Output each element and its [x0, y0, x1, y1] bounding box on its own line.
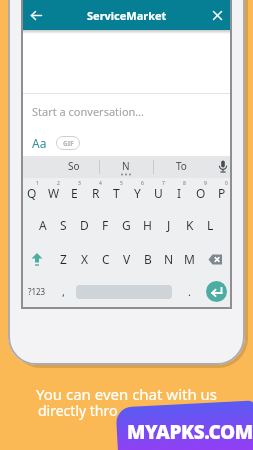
button[interactable]: N — [122, 159, 130, 173]
staticText: directly thro — [38, 401, 118, 420]
staticText: U — [154, 185, 163, 201]
button[interactable]: I — [169, 178, 190, 208]
button[interactable]: F — [95, 208, 116, 242]
staticText: Q — [27, 185, 37, 201]
staticText: 8 — [183, 180, 186, 187]
staticText: Y — [134, 185, 141, 201]
staticText: 6 — [141, 180, 144, 187]
staticText: C — [102, 251, 110, 267]
staticText: MYAPKS.COM — [127, 419, 253, 445]
button[interactable]: B — [137, 242, 158, 276]
button[interactable]: So — [68, 159, 80, 173]
button[interactable]: M — [179, 242, 200, 276]
button[interactable]: G — [116, 208, 137, 242]
button[interactable]: L — [200, 208, 221, 242]
staticText: R — [92, 185, 100, 201]
button[interactable] — [200, 242, 232, 276]
staticText: F — [102, 217, 109, 233]
button[interactable]: P — [211, 178, 232, 208]
staticText: Start a conversation… — [32, 104, 145, 119]
staticText: X — [81, 251, 89, 267]
staticText: M — [184, 251, 195, 267]
button[interactable]: Z — [53, 242, 74, 276]
button[interactable]: D — [74, 208, 95, 242]
button[interactable]: K — [179, 208, 200, 242]
button[interactable]: W — [43, 178, 64, 208]
button[interactable]: O — [190, 178, 211, 208]
button[interactable] — [29, 8, 43, 22]
button[interactable] — [216, 159, 229, 175]
staticText: 0 — [225, 180, 228, 187]
staticText: ?123 — [28, 286, 46, 297]
staticText: GIF — [63, 139, 74, 148]
button[interactable]: Aa — [32, 135, 47, 151]
button[interactable]: A — [32, 208, 53, 242]
staticText: 1 — [36, 180, 39, 187]
staticText: W — [48, 185, 60, 201]
button[interactable] — [116, 400, 253, 450]
staticText: G — [122, 217, 131, 233]
staticText: You can even chat with us — [0, 384, 253, 404]
staticText: P — [218, 185, 226, 201]
button[interactable]: Y — [127, 178, 148, 208]
button[interactable]: E — [64, 178, 85, 208]
staticText: 2 — [57, 180, 60, 187]
button[interactable]: , — [53, 276, 74, 307]
staticText: H — [143, 217, 152, 233]
staticText: K — [186, 217, 194, 233]
staticText: 9 — [204, 180, 207, 187]
button[interactable]: GIF — [56, 136, 80, 150]
button[interactable]: . — [178, 276, 200, 307]
button[interactable]: N — [158, 242, 179, 276]
button[interactable]: To — [176, 159, 187, 173]
staticText: , — [62, 284, 65, 299]
button[interactable] — [200, 276, 232, 307]
staticText: Z — [60, 251, 67, 267]
staticText: E — [71, 185, 78, 201]
staticText: . — [188, 284, 191, 299]
button[interactable] — [76, 276, 172, 307]
button[interactable] — [210, 8, 224, 22]
staticText: J — [167, 217, 171, 233]
button[interactable]: Q — [21, 178, 43, 208]
button[interactable]: U — [148, 178, 169, 208]
staticText: D — [80, 217, 89, 233]
staticText: 3 — [78, 180, 81, 187]
button[interactable]: S — [53, 208, 74, 242]
button[interactable]: R — [85, 178, 106, 208]
button[interactable]: H — [137, 208, 158, 242]
staticText: T — [113, 185, 120, 201]
button[interactable]: V — [116, 242, 137, 276]
staticText: 7 — [162, 180, 165, 187]
staticText: S — [60, 217, 67, 233]
button[interactable]: ?123 — [21, 276, 53, 307]
staticText: N — [164, 251, 174, 267]
staticText: O — [196, 185, 206, 201]
button[interactable]: T — [106, 178, 127, 208]
staticText: 4 — [99, 180, 102, 187]
staticText: 5 — [120, 180, 123, 187]
button[interactable]: X — [74, 242, 95, 276]
button[interactable]: C — [95, 242, 116, 276]
staticText: V — [123, 251, 131, 267]
button[interactable] — [21, 242, 53, 276]
staticText: B — [144, 251, 152, 267]
staticText: A — [39, 217, 47, 233]
staticText: L — [207, 217, 214, 233]
staticText: ServiceMarket — [87, 8, 167, 23]
staticText: I — [177, 185, 182, 201]
button[interactable]: J — [158, 208, 179, 242]
